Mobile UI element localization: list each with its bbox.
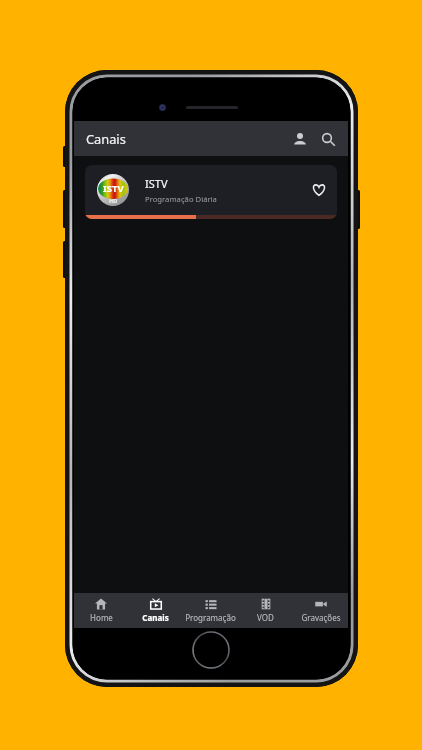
button[interactable]: ISTV bbox=[85, 165, 337, 219]
staticText: ISTV bbox=[103, 182, 124, 195]
staticText: HD bbox=[109, 197, 118, 204]
staticText: Gravações bbox=[301, 612, 341, 623]
button[interactable]: Account bbox=[286, 125, 314, 153]
button[interactable]: Favorite bbox=[307, 178, 331, 202]
staticText: ISTV bbox=[145, 176, 168, 191]
staticText: Canais bbox=[86, 130, 126, 147]
button[interactable]: Canais bbox=[128, 593, 183, 628]
button[interactable]: Gravações bbox=[293, 593, 348, 628]
staticText: Programação bbox=[185, 612, 236, 623]
staticText: Home bbox=[90, 612, 113, 623]
button[interactable]: Search bbox=[314, 125, 342, 153]
button[interactable]: VOD bbox=[238, 593, 293, 628]
staticText: VOD bbox=[257, 612, 274, 623]
staticText: Canais bbox=[142, 612, 169, 623]
button[interactable]: Programação bbox=[183, 593, 238, 628]
button[interactable]: Home bbox=[74, 593, 128, 628]
staticText: Programação Diária bbox=[145, 194, 217, 204]
